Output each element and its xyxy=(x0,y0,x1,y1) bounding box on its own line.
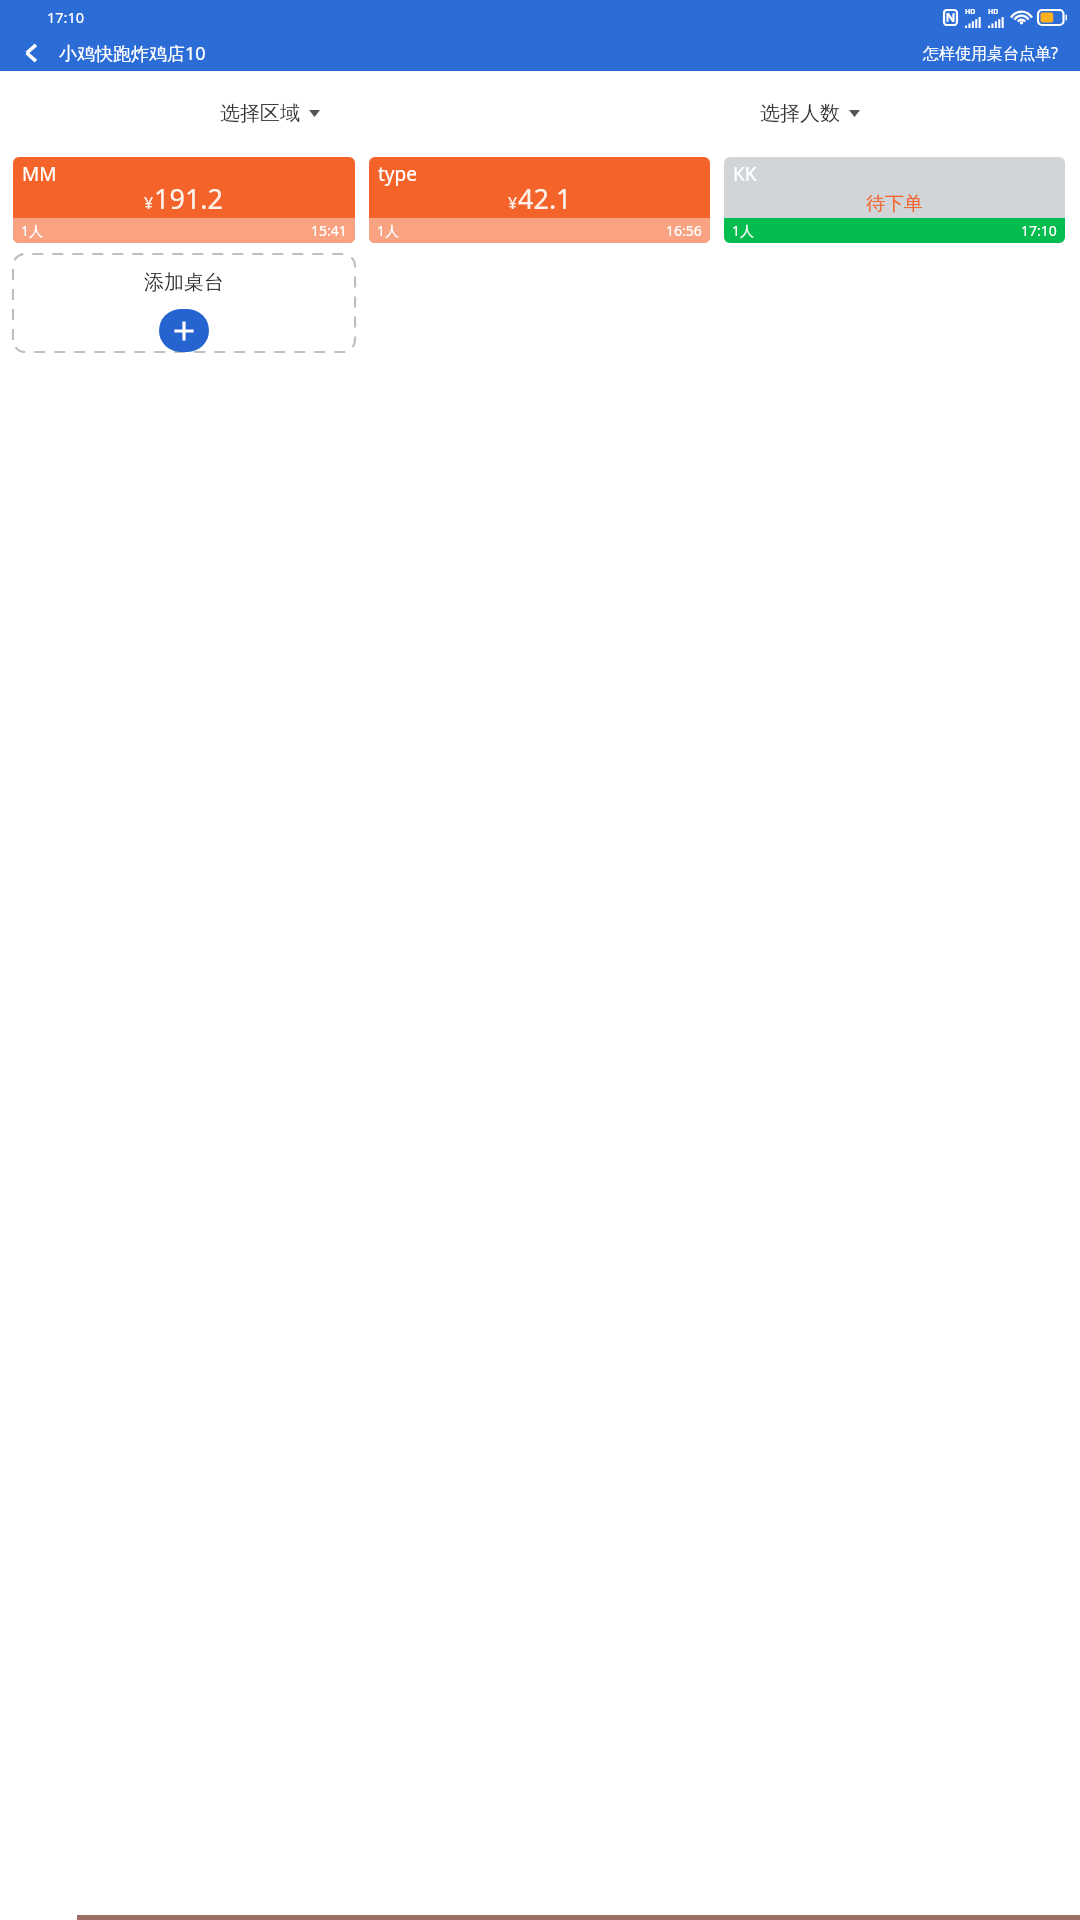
staticText: MM xyxy=(22,161,57,187)
button[interactable]: 选择区域 xyxy=(220,101,320,126)
staticText: 42.1 xyxy=(518,180,572,217)
button[interactable]: type xyxy=(369,157,710,243)
staticText: 选择区域 xyxy=(220,101,300,126)
button[interactable]: 添加桌台 xyxy=(13,254,355,352)
staticText: 1人 xyxy=(377,221,400,240)
button[interactable]: KK xyxy=(724,157,1065,243)
button[interactable]: 怎样使用桌台点单? xyxy=(923,42,1058,64)
staticText: ¥ xyxy=(508,192,518,214)
staticText: 17:10 xyxy=(47,7,85,27)
staticText: 1人 xyxy=(732,221,755,240)
staticText: KK xyxy=(733,161,757,187)
staticText: 17:10 xyxy=(1021,221,1057,240)
staticText: 15:41 xyxy=(311,221,347,240)
staticText: HD xyxy=(988,7,999,17)
staticText: 选择人数 xyxy=(760,101,840,126)
staticText: 16:56 xyxy=(666,221,702,240)
staticText: HD xyxy=(965,7,976,17)
staticText: type xyxy=(378,161,417,187)
staticText: 添加桌台 xyxy=(144,270,224,295)
button[interactable]: Back xyxy=(8,35,56,71)
staticText: 191.2 xyxy=(154,180,224,217)
staticText: 待下单 xyxy=(866,192,923,216)
staticText: 小鸡快跑炸鸡店10 xyxy=(59,41,206,66)
staticText: ¥ xyxy=(144,192,154,214)
button[interactable]: MM xyxy=(13,157,355,243)
staticText: 1人 xyxy=(21,221,44,240)
button[interactable]: 选择人数 xyxy=(760,101,860,126)
